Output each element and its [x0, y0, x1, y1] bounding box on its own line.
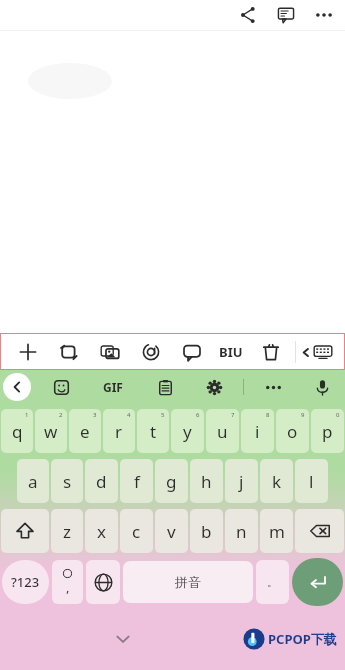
button[interactable]: Image: [89, 334, 130, 369]
button[interactable]: Clipboard: [152, 374, 178, 400]
staticText: a: [28, 470, 38, 493]
staticText: b: [201, 520, 212, 543]
staticText: 拼音: [175, 574, 201, 590]
button[interactable]: More: [260, 374, 286, 400]
button[interactable]: Hide keyboard: [296, 334, 340, 369]
button[interactable]: Comment: [171, 334, 212, 369]
staticText: 4: [127, 411, 131, 419]
button[interactable]: Mention: [130, 334, 171, 369]
staticText: 1: [25, 411, 29, 419]
staticText: 7: [231, 411, 235, 419]
staticText: PCPOP下载: [268, 630, 337, 648]
button[interactable]: 5: [137, 409, 169, 453]
staticText: h: [201, 470, 212, 493]
staticText: n: [236, 520, 247, 543]
staticText: s: [63, 470, 72, 493]
button[interactable]: h: [190, 459, 223, 503]
button[interactable]: 7: [206, 409, 239, 453]
button[interactable]: v: [155, 509, 188, 553]
button[interactable]: Shift: [1, 509, 49, 553]
staticText: 3: [93, 411, 97, 419]
button[interactable]: 2: [35, 409, 67, 453]
staticText: c: [132, 520, 141, 543]
button[interactable]: ?123: [2, 560, 49, 604]
staticText: BIU: [219, 343, 243, 361]
button[interactable]: Add: [7, 334, 48, 369]
staticText: 9: [301, 411, 305, 419]
button[interactable]: 拼音: [123, 561, 253, 603]
button[interactable]: Repost: [48, 334, 89, 369]
staticText: f: [134, 470, 140, 493]
other: Backspace: [309, 520, 331, 542]
button[interactable]: Switch language: [86, 560, 120, 604]
staticText: l: [309, 470, 314, 493]
button[interactable]: Backspace: [295, 509, 344, 553]
staticText: ?123: [11, 573, 40, 591]
button[interactable]: 4: [103, 409, 135, 453]
staticText: u: [217, 420, 228, 443]
button[interactable]: a: [17, 459, 49, 503]
staticText: GIF: [103, 379, 123, 395]
button[interactable]: l: [295, 459, 328, 503]
button[interactable]: Delete: [250, 334, 291, 369]
button[interactable]: 1: [1, 409, 33, 453]
staticText: j: [239, 470, 244, 493]
button[interactable]: Voice input: [309, 374, 335, 400]
button[interactable]: BIU: [212, 334, 250, 369]
button[interactable]: 3: [69, 409, 101, 453]
staticText: v: [167, 520, 176, 543]
staticText: 6: [196, 411, 200, 419]
staticText: d: [96, 470, 107, 493]
button[interactable]: Comments: [275, 4, 297, 26]
button[interactable]: n: [225, 509, 258, 553]
button[interactable]: Back: [3, 373, 31, 401]
staticText: 8: [266, 411, 270, 419]
button[interactable]: k: [260, 459, 293, 503]
button[interactable]: f: [120, 459, 153, 503]
button[interactable]: m: [260, 509, 293, 553]
button[interactable]: 6: [171, 409, 204, 453]
button[interactable]: 。: [256, 560, 289, 604]
staticText: 2: [59, 411, 63, 419]
button[interactable]: x: [85, 509, 118, 553]
button[interactable]: GIF: [97, 375, 129, 399]
button[interactable]: More options: [313, 4, 335, 26]
staticText: 。: [267, 575, 278, 589]
staticText: 5: [161, 411, 165, 419]
other: Shift: [15, 521, 35, 541]
button[interactable]: Stickers: [48, 374, 74, 400]
staticText: o: [287, 420, 298, 443]
button[interactable]: s: [51, 459, 83, 503]
button[interactable]: 8: [241, 409, 274, 453]
button[interactable]: b: [190, 509, 223, 553]
button[interactable]: Comma and emoji: [52, 560, 83, 604]
button[interactable]: j: [225, 459, 258, 503]
staticText: m: [269, 520, 285, 543]
staticText: e: [80, 420, 90, 443]
staticText: y: [183, 420, 192, 443]
staticText: k: [272, 470, 282, 493]
staticText: z: [63, 520, 71, 543]
button[interactable]: Settings: [201, 374, 227, 400]
staticText: r: [115, 420, 123, 443]
staticText: p: [322, 420, 333, 443]
button[interactable]: z: [51, 509, 83, 553]
staticText: x: [97, 520, 106, 543]
staticText: q: [12, 420, 23, 443]
staticText: i: [255, 420, 260, 443]
button[interactable]: c: [120, 509, 153, 553]
button[interactable]: 0: [311, 409, 344, 453]
button[interactable]: 9: [276, 409, 309, 453]
staticText: ,: [66, 578, 70, 596]
staticText: 0: [336, 411, 340, 419]
button[interactable]: Enter: [292, 558, 343, 606]
staticText: w: [44, 420, 58, 443]
button[interactable]: d: [85, 459, 118, 503]
button[interactable]: g: [155, 459, 188, 503]
staticText: g: [166, 470, 177, 493]
staticText: t: [150, 420, 157, 443]
button[interactable]: Share: [237, 4, 259, 26]
